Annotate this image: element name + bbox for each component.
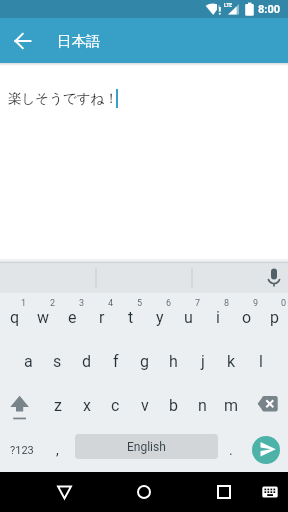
button[interactable] (8, 26, 38, 56)
button[interactable]: 9 (232, 293, 261, 338)
button[interactable]: k (217, 338, 246, 383)
staticText: 0 (281, 298, 287, 309)
button[interactable]: 8 (203, 293, 232, 338)
staticText: 4 (108, 298, 114, 309)
staticText: ?123 (10, 444, 34, 457)
staticText: LTE (224, 2, 233, 8)
button[interactable]: l (246, 338, 275, 383)
staticText: o (242, 308, 252, 327)
staticText: z (54, 396, 62, 415)
staticText: q (10, 308, 20, 327)
button[interactable] (130, 478, 158, 506)
staticText: 日本語 (57, 32, 101, 50)
button[interactable] (257, 262, 288, 293)
staticText: p (270, 308, 279, 327)
staticText: w (37, 308, 50, 327)
staticText: y (156, 308, 164, 327)
button[interactable]: 5 (116, 293, 145, 338)
button[interactable]: 7 (174, 293, 203, 338)
staticText: English (127, 440, 166, 454)
staticText: d (82, 352, 92, 371)
button[interactable]: , (43, 428, 72, 472)
staticText: 5 (137, 298, 143, 309)
button[interactable]: d (72, 338, 101, 383)
button[interactable]: 3 (58, 293, 87, 338)
staticText: k (227, 352, 236, 371)
staticText: i (216, 308, 220, 327)
staticText: 9 (253, 298, 259, 309)
staticText: e (68, 308, 77, 327)
staticText: 7 (195, 298, 201, 309)
button[interactable]: English (75, 434, 218, 459)
staticText: t (128, 308, 134, 327)
button[interactable] (0, 383, 43, 428)
staticText: j (201, 352, 205, 371)
staticText: 6 (166, 298, 172, 309)
button[interactable]: 2 (29, 293, 58, 338)
button[interactable]: 0 (261, 293, 288, 338)
button[interactable]: a (14, 338, 43, 383)
button[interactable]: f (101, 338, 130, 383)
button[interactable]: v (130, 383, 159, 428)
button[interactable] (252, 436, 280, 464)
button[interactable]: 1 (0, 293, 29, 338)
button[interactable]: x (72, 383, 101, 428)
staticText: v (141, 396, 149, 415)
staticText: n (198, 396, 207, 415)
button[interactable]: c (101, 383, 130, 428)
staticText: r (99, 308, 105, 327)
staticText: x (83, 396, 91, 415)
button[interactable]: h (159, 338, 188, 383)
staticText: s (53, 352, 62, 371)
button[interactable]: s (43, 338, 72, 383)
staticText: 8 (224, 298, 230, 309)
staticText: 3 (79, 298, 85, 309)
staticText: f (113, 352, 119, 371)
button[interactable] (245, 383, 288, 428)
staticText: g (140, 352, 149, 371)
staticText: 1 (21, 298, 27, 309)
button[interactable]: g (130, 338, 159, 383)
staticText: a (24, 352, 33, 371)
staticText: l (259, 352, 263, 371)
staticText: . (229, 442, 233, 458)
button[interactable] (210, 478, 238, 506)
staticText: h (169, 352, 178, 371)
staticText: 楽しそうですね！ (8, 90, 118, 107)
button[interactable] (50, 478, 78, 506)
button[interactable] (256, 478, 284, 506)
button[interactable]: 6 (145, 293, 174, 338)
staticText: m (224, 396, 239, 415)
staticText: b (169, 396, 178, 415)
staticText: 8:00 (258, 3, 281, 16)
staticText: u (184, 308, 193, 327)
button[interactable]: m (217, 383, 246, 428)
staticText: 2 (50, 298, 56, 309)
button[interactable]: 4 (87, 293, 116, 338)
button[interactable]: b (159, 383, 188, 428)
button[interactable]: ?123 (0, 428, 43, 472)
staticText: c (111, 396, 120, 415)
staticText: , (56, 442, 59, 458)
button[interactable]: n (188, 383, 217, 428)
button[interactable]: z (43, 383, 72, 428)
button[interactable]: . (216, 428, 245, 472)
button[interactable]: j (188, 338, 217, 383)
